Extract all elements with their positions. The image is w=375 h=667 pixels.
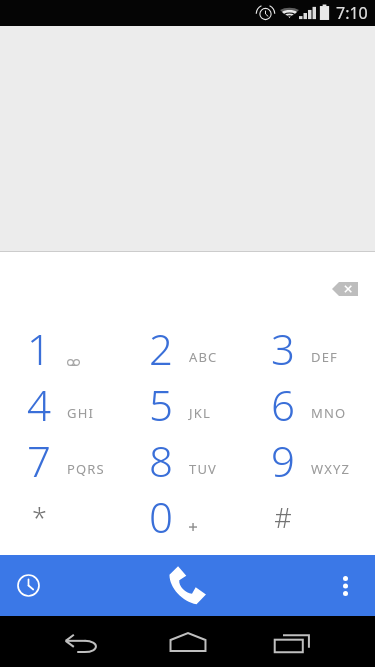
staticText: ABC bbox=[189, 348, 218, 366]
button[interactable]: 5 bbox=[126, 376, 248, 432]
staticText: PQRS bbox=[67, 460, 105, 478]
staticText: 0 bbox=[149, 488, 173, 544]
button[interactable]: 0 bbox=[126, 488, 248, 544]
button[interactable]: More options bbox=[250, 555, 375, 616]
staticText: 7:10 bbox=[336, 2, 368, 24]
button[interactable]: Home bbox=[145, 616, 230, 667]
staticText: 8 bbox=[149, 432, 173, 488]
button[interactable]: Back bbox=[40, 616, 124, 667]
staticText: # bbox=[274, 499, 292, 536]
staticText: DEF bbox=[311, 348, 338, 366]
staticText: * bbox=[32, 499, 47, 536]
button[interactable]: 7 bbox=[4, 432, 126, 488]
button[interactable]: Recent apps bbox=[250, 616, 334, 667]
staticText: 7 bbox=[27, 432, 51, 488]
staticText: 3 bbox=[271, 320, 295, 376]
button[interactable]: # bbox=[248, 488, 370, 544]
staticText: TUV bbox=[189, 460, 218, 478]
staticText: 2 bbox=[149, 320, 173, 376]
staticText: JKL bbox=[189, 404, 211, 422]
button[interactable]: 6 bbox=[248, 376, 370, 432]
staticText: GHI bbox=[67, 404, 95, 422]
button[interactable]: Call history bbox=[0, 555, 125, 616]
staticText: 6 bbox=[271, 376, 295, 432]
button[interactable]: 4 bbox=[4, 376, 126, 432]
button[interactable]: * bbox=[4, 488, 126, 544]
staticText: 4 bbox=[27, 376, 51, 432]
button[interactable]: 9 bbox=[248, 432, 370, 488]
staticText: 5 bbox=[149, 376, 173, 432]
staticText: WXYZ bbox=[311, 460, 351, 478]
button[interactable]: 1 bbox=[4, 320, 126, 376]
button[interactable]: Call bbox=[125, 555, 250, 616]
staticText: MNO bbox=[311, 404, 347, 422]
staticText: 9 bbox=[271, 432, 295, 488]
button[interactable]: 8 bbox=[126, 432, 248, 488]
button[interactable]: 2 bbox=[126, 320, 248, 376]
button[interactable]: Delete bbox=[320, 269, 370, 309]
staticText: 1 bbox=[27, 320, 51, 376]
button[interactable]: 3 bbox=[248, 320, 370, 376]
